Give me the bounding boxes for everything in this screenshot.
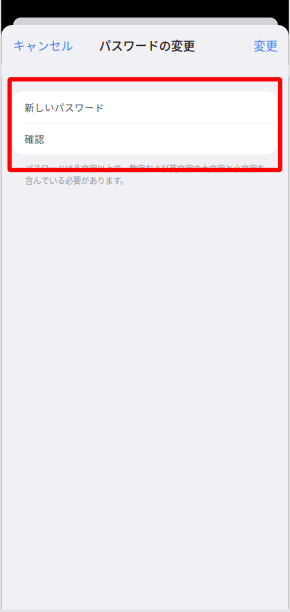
staticText: キャンセル (13, 37, 73, 54)
button[interactable]: キャンセル (13, 35, 83, 55)
button[interactable]: 新しいパスワード (12, 91, 276, 123)
staticText: 確認 (24, 132, 44, 146)
staticText: 新しいパスワード (24, 100, 104, 114)
button[interactable]: 変更 (227, 35, 277, 55)
button[interactable]: 確認 (12, 123, 276, 154)
staticText: パスワードの変更 (99, 37, 195, 54)
staticText: パスワードは８文字以上で、数字および英文字の大文字と小文字を含んでいる必要があり… (25, 162, 265, 186)
staticText: 変更 (253, 37, 277, 54)
